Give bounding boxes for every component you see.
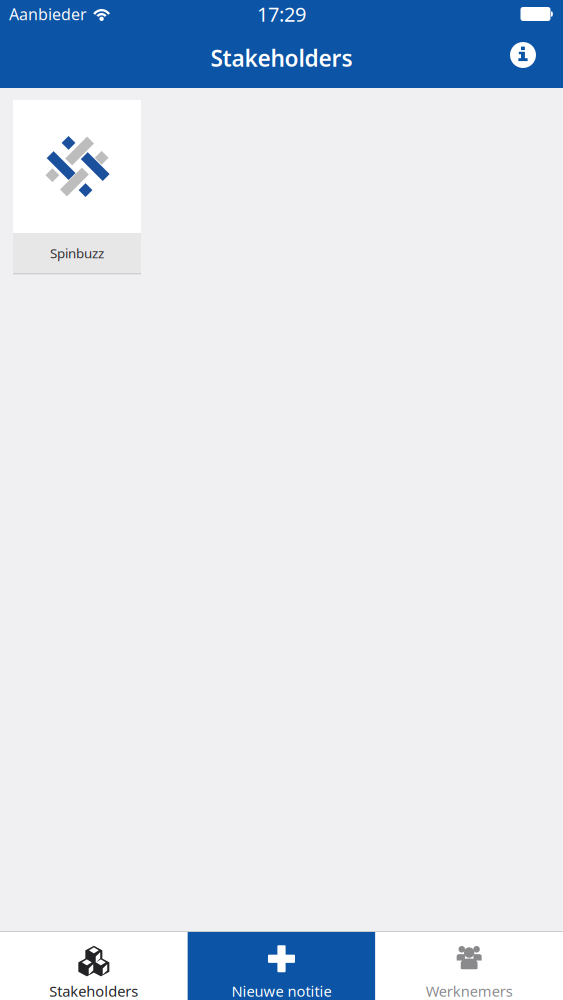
button[interactable]: Nieuwe notitie bbox=[188, 932, 375, 1000]
staticText: Stakeholders bbox=[49, 981, 138, 1000]
staticText: Nieuwe notitie bbox=[231, 981, 331, 1000]
button[interactable]: Stakeholders bbox=[0, 932, 188, 1000]
staticText: Aanbieder bbox=[9, 3, 87, 25]
staticText: Spinbuzz bbox=[50, 244, 104, 262]
staticText: Stakeholders bbox=[210, 43, 352, 73]
button[interactable]: Info bbox=[498, 36, 548, 80]
staticText: Werknemers bbox=[426, 981, 513, 1000]
staticText: 17:29 bbox=[257, 1, 306, 27]
button[interactable]: Werknemers bbox=[375, 932, 563, 1000]
button[interactable]: Spinbuzz bbox=[13, 100, 141, 275]
